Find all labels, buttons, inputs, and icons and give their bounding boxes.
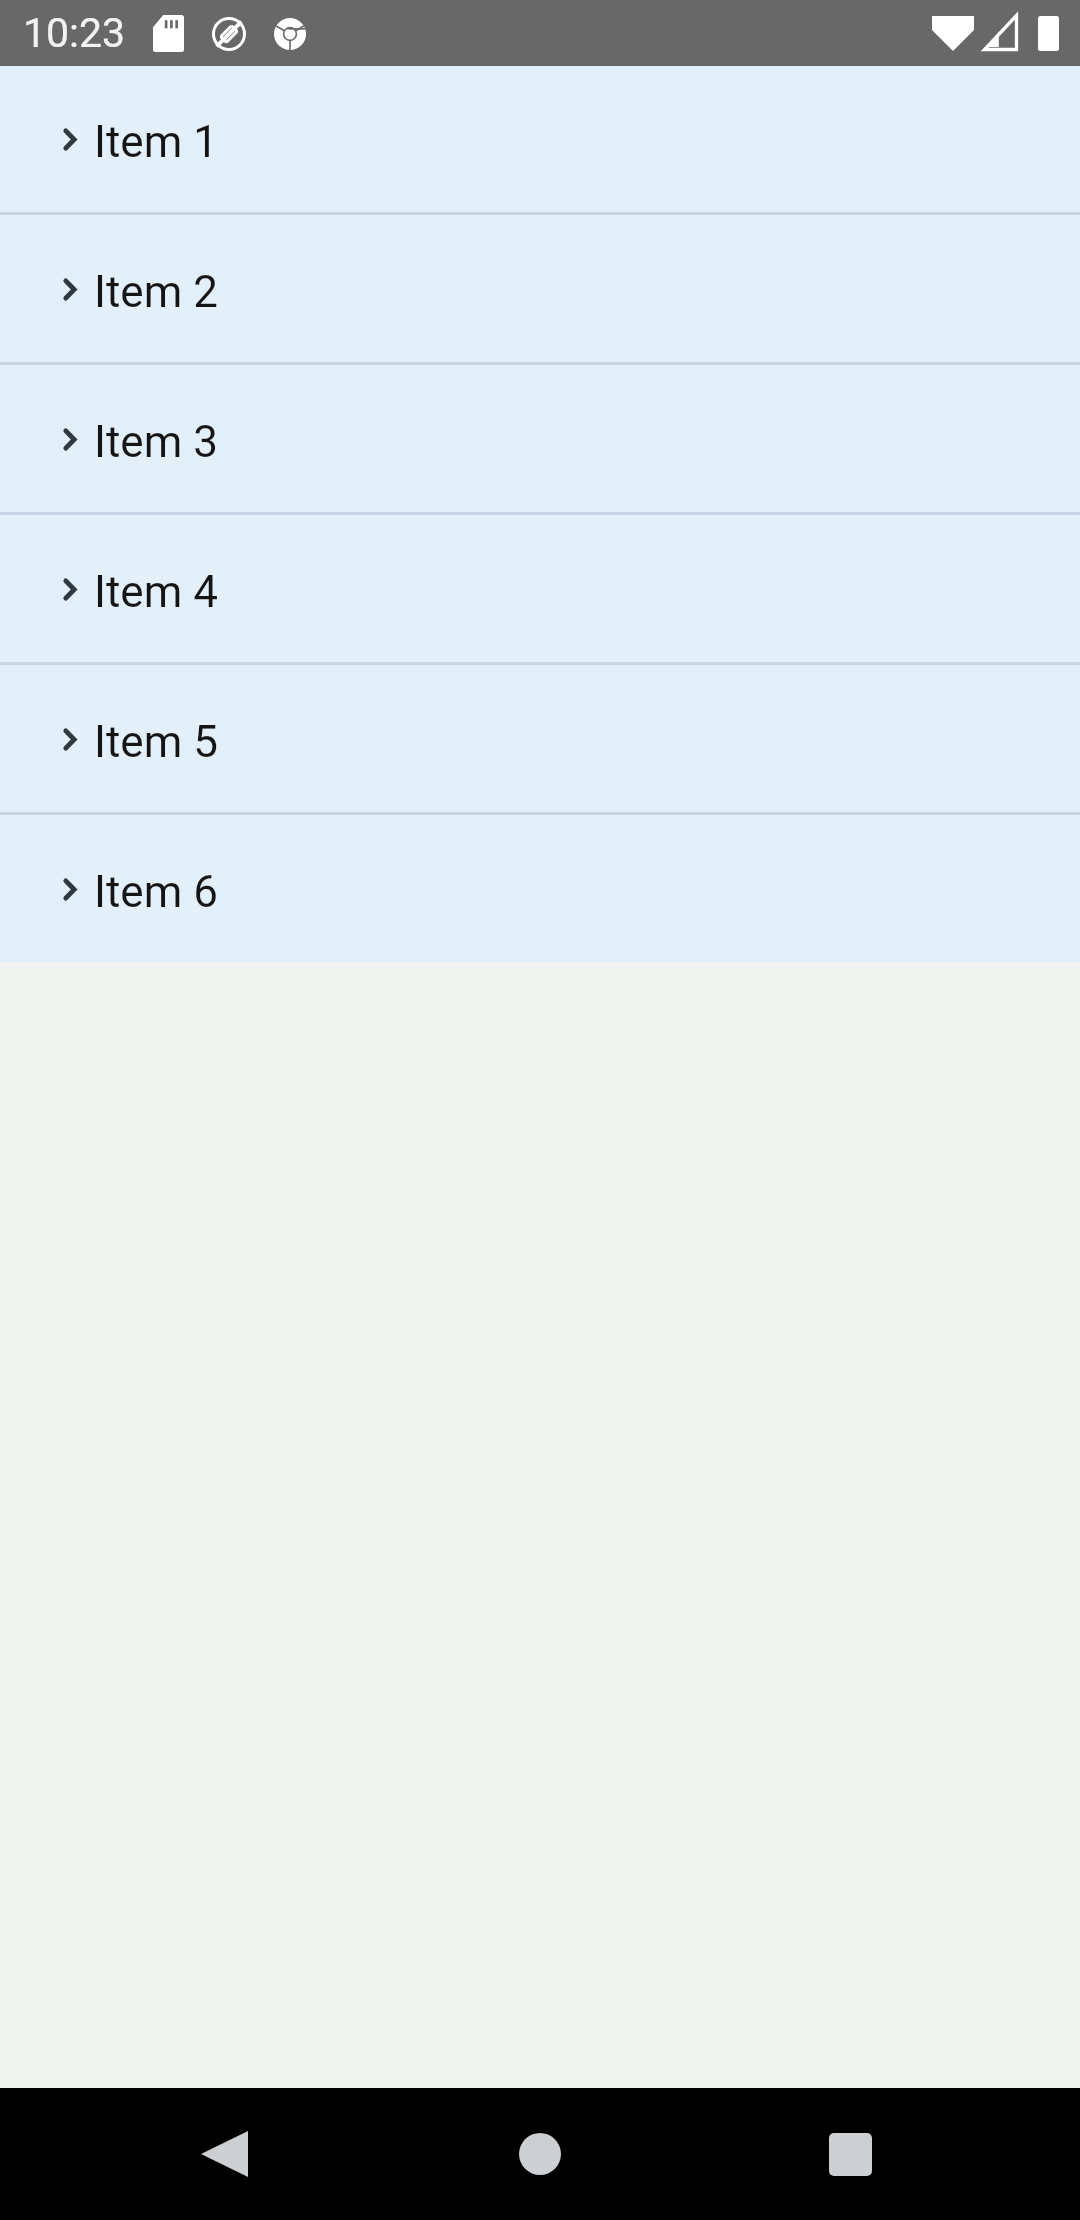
button[interactable]: Home [484, 2098, 596, 2210]
staticText: Item 5 [94, 716, 218, 768]
staticText: Item 1 [94, 116, 218, 168]
button[interactable]: Item 4 [0, 512, 1080, 662]
button[interactable]: Item 1 [0, 66, 1080, 212]
button[interactable]: Back [168, 2098, 280, 2210]
staticText: 10:23 [23, 9, 126, 57]
button[interactable]: Item 5 [0, 662, 1080, 812]
button[interactable]: Recent apps [794, 2098, 906, 2210]
button[interactable]: Item 2 [0, 212, 1080, 362]
staticText: Item 6 [94, 866, 218, 918]
button[interactable]: Item 6 [0, 812, 1080, 962]
staticText: Item 4 [94, 566, 218, 618]
staticText: Item 3 [94, 416, 218, 468]
button[interactable]: Item 3 [0, 362, 1080, 512]
staticText: Item 2 [94, 266, 218, 318]
